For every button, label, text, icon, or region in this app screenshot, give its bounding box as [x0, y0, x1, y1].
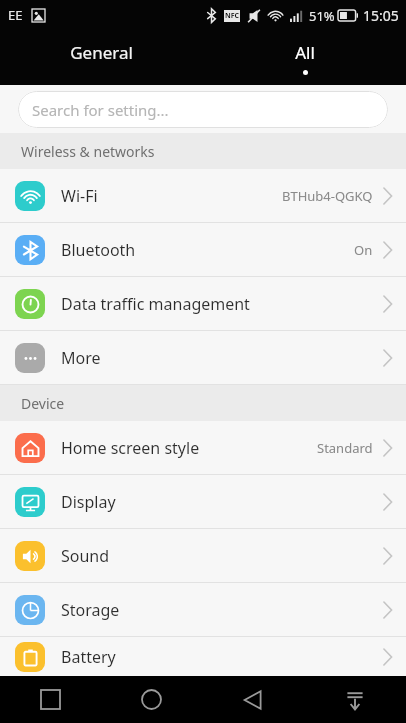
- button[interactable]: Home screen style: [0, 421, 406, 475]
- staticText: NFC: [225, 11, 240, 21]
- staticText: Sound: [61, 545, 110, 567]
- staticText: BTHub4-QGKQ: [282, 187, 373, 205]
- button[interactable]: Sound: [0, 529, 406, 583]
- staticText: General: [70, 41, 133, 64]
- staticText: All: [295, 41, 315, 64]
- button[interactable]: More: [0, 331, 406, 385]
- staticText: Bluetooth: [61, 239, 136, 261]
- button[interactable]: Search for setting...: [18, 91, 388, 128]
- staticText: 15:05: [363, 6, 399, 25]
- button[interactable]: Display: [0, 475, 406, 529]
- button[interactable]: Home: [101, 676, 202, 723]
- button[interactable]: Wi-Fi: [0, 169, 406, 223]
- button[interactable]: Hide navigation bar: [304, 676, 406, 723]
- staticText: Wi-Fi: [61, 185, 98, 207]
- staticText: On: [354, 241, 373, 259]
- button[interactable]: Bluetooth: [0, 223, 406, 277]
- staticText: Device: [21, 394, 65, 413]
- staticText: 51%: [309, 7, 335, 25]
- staticText: Wireless & networks: [21, 142, 155, 161]
- staticText: More: [61, 347, 101, 369]
- button[interactable]: Back: [202, 676, 304, 723]
- button[interactable]: All: [203, 30, 406, 85]
- button[interactable]: Recents: [0, 676, 101, 723]
- button[interactable]: Storage: [0, 583, 406, 637]
- staticText: Standard: [317, 439, 373, 457]
- button[interactable]: Battery: [0, 637, 406, 676]
- staticText: Search for setting...: [32, 100, 169, 120]
- staticText: Display: [61, 491, 116, 513]
- button[interactable]: General: [0, 30, 203, 85]
- staticText: Home screen style: [61, 437, 200, 459]
- button[interactable]: Data traffic management: [0, 277, 406, 331]
- staticText: Battery: [61, 646, 116, 668]
- staticText: EE: [8, 6, 23, 24]
- staticText: Data traffic management: [61, 293, 250, 315]
- staticText: Storage: [61, 599, 120, 621]
